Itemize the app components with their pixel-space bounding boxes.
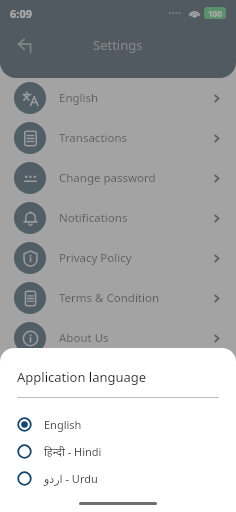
button[interactable]: Back — [10, 30, 40, 60]
staticText: اردو - Urdu — [44, 471, 98, 486]
button[interactable]: हिन्दी - Hindi — [0, 438, 236, 465]
staticText: Application language — [17, 368, 147, 386]
staticText: Privacy Policy — [59, 250, 132, 266]
button[interactable]: About Us — [0, 318, 236, 358]
button[interactable]: Terms & Condition — [0, 278, 236, 318]
staticText: About Us — [59, 330, 109, 346]
button[interactable]: Change password — [0, 158, 236, 198]
staticText: Notifications — [59, 210, 128, 226]
button[interactable]: Privacy Policy — [0, 238, 236, 278]
staticText: 6:09 — [10, 6, 32, 21]
button[interactable]: اردو - Urdu — [0, 465, 236, 492]
staticText: Terms & Condition — [59, 290, 160, 306]
staticText: 100 — [208, 8, 222, 19]
button[interactable]: English — [0, 78, 236, 118]
staticText: हिन्दी - Hindi — [44, 444, 102, 459]
staticText: Change password — [59, 170, 156, 186]
staticText: English — [59, 90, 99, 106]
staticText: Transactions — [59, 130, 128, 146]
button[interactable]: English — [0, 411, 236, 438]
button[interactable]: Transactions — [0, 118, 236, 158]
button[interactable]: Notifications — [0, 198, 236, 238]
staticText: English — [44, 417, 82, 432]
staticText: Settings — [93, 36, 143, 54]
